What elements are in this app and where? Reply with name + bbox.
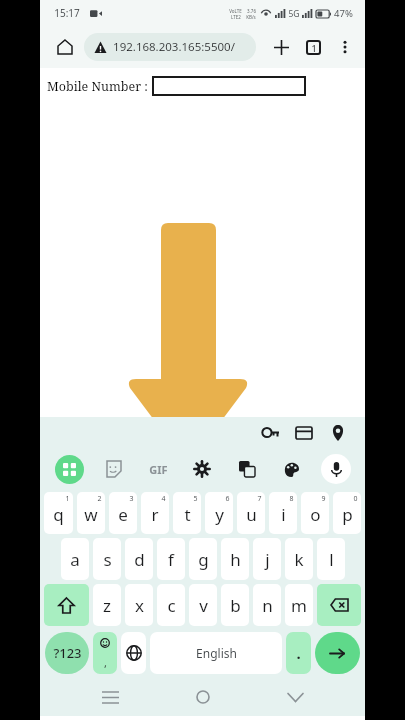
- staticText: e: [118, 503, 128, 526]
- button[interactable]: i: [269, 492, 297, 534]
- staticText: m: [291, 594, 307, 617]
- staticText: t: [184, 503, 191, 526]
- staticText: 2: [97, 494, 102, 504]
- staticText: 7: [257, 494, 262, 504]
- staticText: Mobile Number :: [47, 78, 148, 95]
- button[interactable]: Shift: [44, 584, 89, 626]
- button[interactable]: r: [141, 492, 169, 534]
- button[interactable]: g: [189, 538, 217, 580]
- staticText: LTE2: [231, 14, 241, 20]
- button[interactable]: z: [93, 584, 121, 626]
- staticText: j: [265, 548, 270, 571]
- staticText: VoLTE: [229, 8, 242, 14]
- button[interactable]: Hide keyboard: [272, 680, 318, 714]
- staticText: GIF: [149, 462, 168, 477]
- staticText: 1: [65, 494, 70, 504]
- button[interactable]: h: [221, 538, 249, 580]
- staticText: r: [151, 503, 159, 526]
- button[interactable]: y: [205, 492, 233, 534]
- button[interactable]: Change language: [121, 632, 146, 674]
- staticText: 4: [161, 494, 166, 504]
- button[interactable]: New tab: [265, 31, 297, 63]
- button[interactable]: o: [301, 492, 329, 534]
- button[interactable]: u: [237, 492, 265, 534]
- staticText: 0: [353, 494, 358, 504]
- button[interactable]: a: [61, 538, 89, 580]
- button[interactable]: v: [189, 584, 217, 626]
- staticText: s: [103, 548, 112, 571]
- staticText: .: [296, 643, 301, 663]
- button[interactable]: t: [173, 492, 201, 534]
- button[interactable]: Recent apps: [87, 680, 133, 714]
- button[interactable]: q: [44, 492, 73, 534]
- button[interactable]: w: [77, 492, 105, 534]
- staticText: KB/s: [246, 14, 256, 20]
- button[interactable]: Home: [180, 680, 226, 714]
- staticText: 3.76: [247, 8, 256, 14]
- button[interactable]: Themes: [276, 454, 306, 484]
- button[interactable]: [152, 76, 306, 96]
- button[interactable]: Tabs: [297, 31, 329, 63]
- staticText: h: [230, 548, 241, 571]
- button[interactable]: k: [285, 538, 313, 580]
- button[interactable]: Stickers: [98, 454, 128, 484]
- button[interactable]: Translate: [232, 454, 262, 484]
- button[interactable]: Enter: [315, 632, 360, 674]
- staticText: 8: [289, 494, 294, 504]
- button[interactable]: .: [286, 632, 311, 674]
- staticText: x: [135, 594, 144, 617]
- staticText: u: [246, 503, 257, 526]
- staticText: g: [198, 548, 209, 571]
- button[interactable]: x: [125, 584, 153, 626]
- staticText: 6: [225, 494, 230, 504]
- staticText: 192.168.203.165:5500/: [113, 39, 235, 55]
- staticText: k: [294, 548, 304, 571]
- button[interactable]: Payment methods: [287, 417, 321, 448]
- button[interactable]: Backspace: [317, 584, 361, 626]
- staticText: a: [70, 548, 80, 571]
- staticText: w: [84, 503, 98, 526]
- button[interactable]: Home: [48, 30, 82, 64]
- button[interactable]: f: [157, 538, 185, 580]
- staticText: 3: [129, 494, 134, 504]
- button[interactable]: ?123: [45, 632, 89, 674]
- staticText: i: [281, 503, 286, 526]
- staticText: z: [103, 594, 111, 617]
- button[interactable]: Passwords: [253, 417, 287, 448]
- staticText: ?123: [53, 644, 82, 662]
- button[interactable]: l: [317, 538, 345, 580]
- button[interactable]: d: [125, 538, 153, 580]
- staticText: v: [199, 594, 208, 617]
- staticText: o: [310, 503, 321, 526]
- staticText: b: [230, 594, 241, 617]
- button[interactable]: e: [109, 492, 137, 534]
- button[interactable]: m: [285, 584, 313, 626]
- staticText: l: [329, 548, 334, 571]
- staticText: f: [168, 548, 174, 571]
- staticText: n: [262, 594, 273, 617]
- button[interactable]: s: [93, 538, 121, 580]
- staticText: d: [134, 548, 145, 571]
- button[interactable]: Addresses: [321, 417, 355, 448]
- staticText: English: [196, 645, 237, 661]
- button[interactable]: Voice input: [321, 454, 351, 484]
- button[interactable]: GIF: [143, 454, 173, 484]
- staticText: 1: [311, 42, 317, 54]
- staticText: 5: [193, 494, 198, 504]
- button[interactable]: b: [221, 584, 249, 626]
- button[interactable]: c: [157, 584, 185, 626]
- button[interactable]: Keyboard apps: [55, 455, 84, 484]
- staticText: p: [342, 503, 353, 526]
- button[interactable]: p: [333, 492, 361, 534]
- staticText: ,: [104, 655, 107, 670]
- button[interactable]: English: [150, 632, 282, 674]
- button[interactable]: More options: [329, 31, 361, 63]
- staticText: 5G: [288, 8, 300, 20]
- staticText: c: [167, 594, 176, 617]
- button[interactable]: 192.168.203.165:5500/: [84, 33, 256, 61]
- staticText: 47%: [334, 7, 353, 20]
- button[interactable]: j: [253, 538, 281, 580]
- button[interactable]: Emoji and comma: [93, 632, 117, 674]
- button[interactable]: n: [253, 584, 281, 626]
- button[interactable]: Settings: [187, 454, 217, 484]
